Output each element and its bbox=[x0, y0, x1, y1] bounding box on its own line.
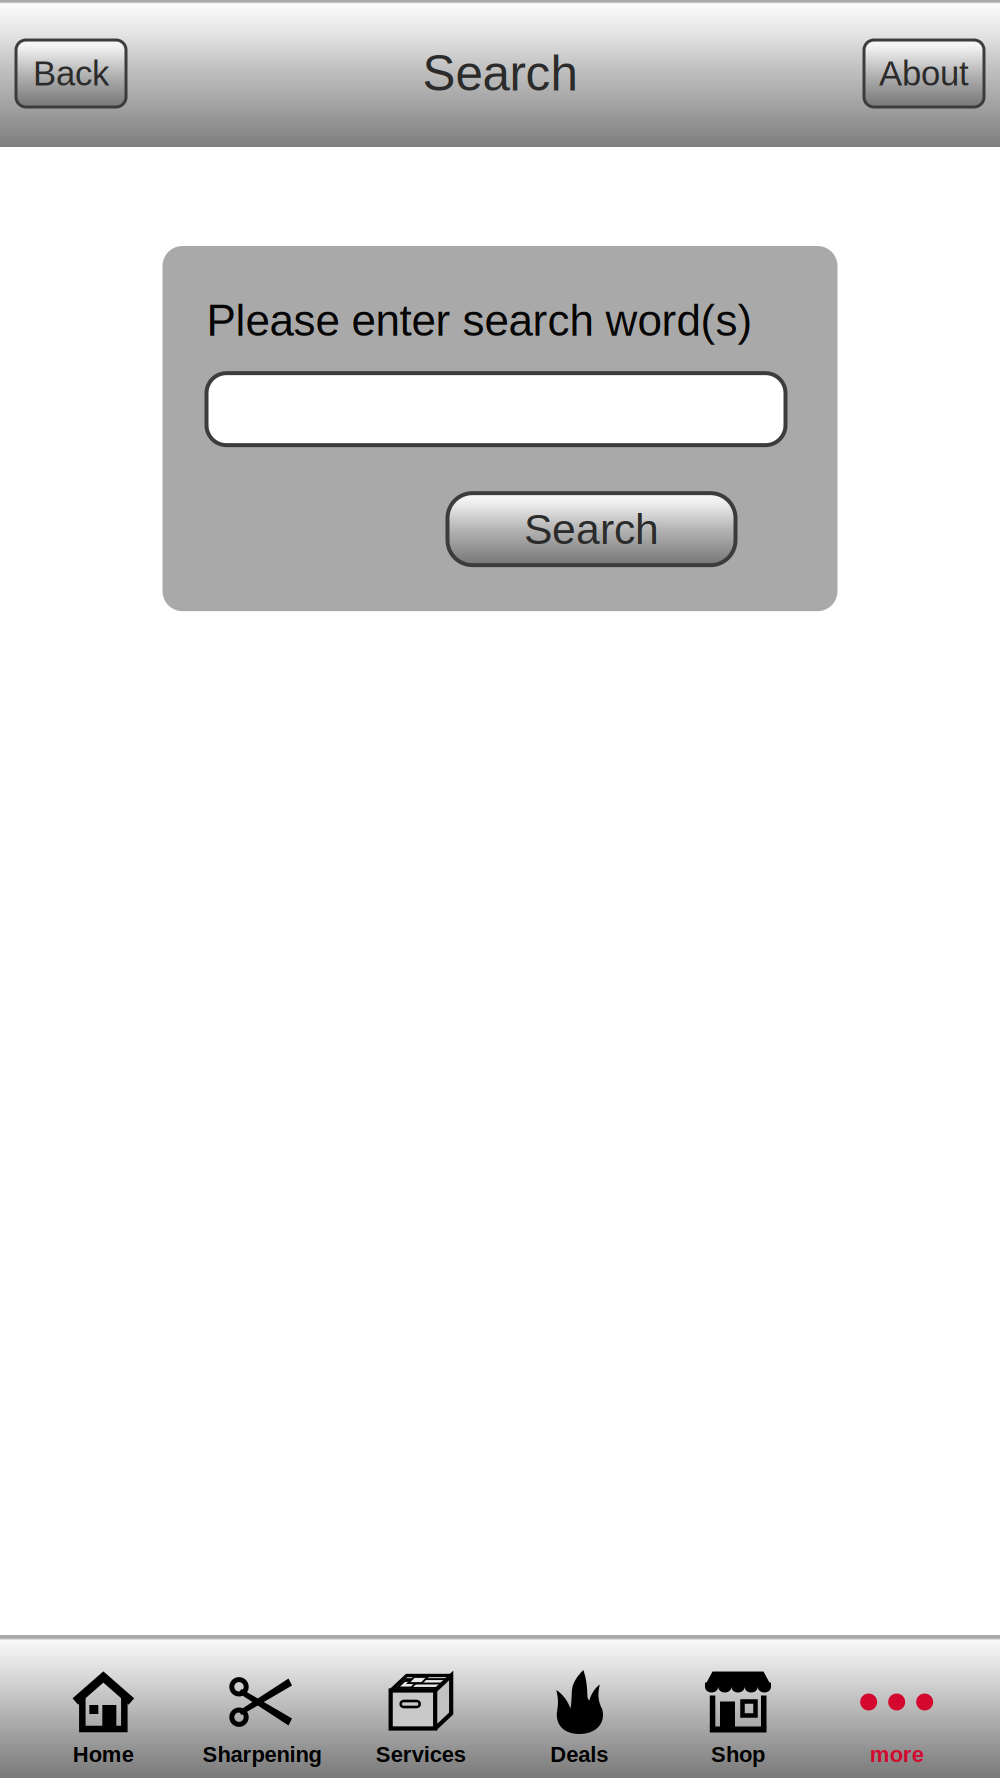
staticText: more bbox=[870, 1742, 924, 1767]
button[interactable]: Services bbox=[341, 1635, 500, 1778]
staticText: Deals bbox=[550, 1742, 608, 1767]
staticText: About bbox=[879, 54, 969, 93]
button[interactable]: Search bbox=[447, 493, 735, 565]
staticText: Sharpening bbox=[202, 1742, 321, 1767]
staticText: Please enter search word(s) bbox=[206, 296, 752, 345]
button[interactable]: Sharpening bbox=[183, 1635, 341, 1778]
button[interactable]: Back bbox=[16, 40, 126, 107]
staticText: Back bbox=[33, 54, 109, 93]
button[interactable]: Shop bbox=[659, 1635, 817, 1778]
staticText: Shop bbox=[711, 1742, 765, 1767]
button[interactable]: About bbox=[864, 40, 984, 107]
staticText: Services bbox=[376, 1742, 466, 1767]
button[interactable]: Home bbox=[24, 1635, 183, 1778]
button[interactable]: Deals bbox=[500, 1635, 659, 1778]
staticText: Search bbox=[422, 46, 577, 101]
button[interactable]: more bbox=[817, 1635, 976, 1778]
staticText: Home bbox=[73, 1742, 134, 1767]
staticText: Search bbox=[524, 505, 659, 553]
